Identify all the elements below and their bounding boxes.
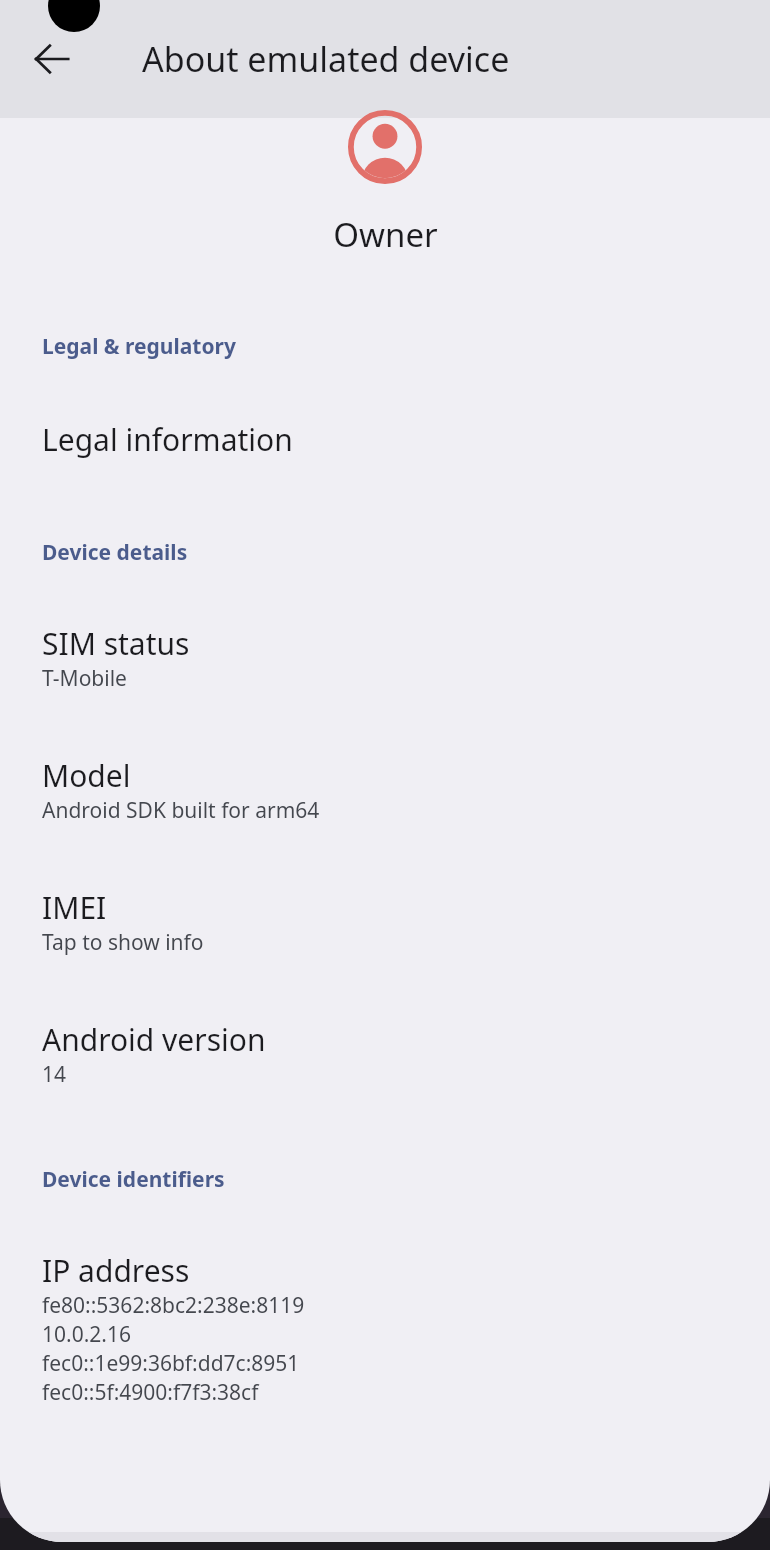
staticText: Legal information bbox=[42, 419, 293, 460]
staticText: Device identifiers bbox=[42, 1165, 225, 1194]
staticText: Tap to show info bbox=[42, 928, 204, 957]
staticText: About emulated device bbox=[142, 36, 510, 82]
staticText: Model bbox=[42, 755, 131, 796]
staticText: Android SDK built for arm64 bbox=[42, 796, 320, 825]
staticText: fec0::1e99:36bf:dd7c:8951 bbox=[42, 1349, 300, 1378]
staticText: T-Mobile bbox=[42, 664, 127, 693]
staticText: fe80::5362:8bc2:238e:8119 bbox=[42, 1291, 305, 1320]
staticText: IP address bbox=[42, 1250, 190, 1291]
staticText: IMEI bbox=[42, 887, 107, 928]
button[interactable]: SIM status bbox=[0, 623, 770, 693]
staticText: Owner bbox=[333, 212, 438, 257]
button[interactable]: IMEI bbox=[0, 887, 770, 957]
staticText: SIM status bbox=[42, 623, 190, 664]
staticText: Legal & regulatory bbox=[42, 332, 236, 361]
button[interactable]: Legal information bbox=[0, 419, 770, 460]
staticText: fec0::5f:4900:f7f3:38cf bbox=[42, 1378, 259, 1407]
staticText: 14 bbox=[42, 1060, 67, 1089]
staticText: 10.0.2.16 bbox=[42, 1320, 131, 1349]
button[interactable]: Navigate up bbox=[18, 25, 86, 93]
button[interactable]: IP address bbox=[0, 1250, 770, 1407]
staticText: Android version bbox=[42, 1019, 266, 1060]
staticText: Device details bbox=[42, 538, 188, 567]
button[interactable]: Model bbox=[0, 755, 770, 825]
button[interactable]: Android version bbox=[0, 1019, 770, 1089]
